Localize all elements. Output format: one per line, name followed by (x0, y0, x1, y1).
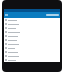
button[interactable]: Search (46, 12, 59, 18)
button[interactable] (4, 42, 60, 46)
button[interactable] (4, 58, 60, 62)
button[interactable] (4, 46, 60, 50)
button[interactable] (4, 30, 60, 34)
button[interactable] (4, 54, 60, 58)
button[interactable] (4, 18, 60, 22)
button[interactable] (4, 26, 60, 30)
button[interactable]: Open navigation menu (4, 12, 8, 18)
button[interactable] (4, 50, 60, 54)
button[interactable] (4, 34, 60, 38)
button[interactable] (4, 38, 60, 42)
button[interactable] (4, 22, 60, 26)
